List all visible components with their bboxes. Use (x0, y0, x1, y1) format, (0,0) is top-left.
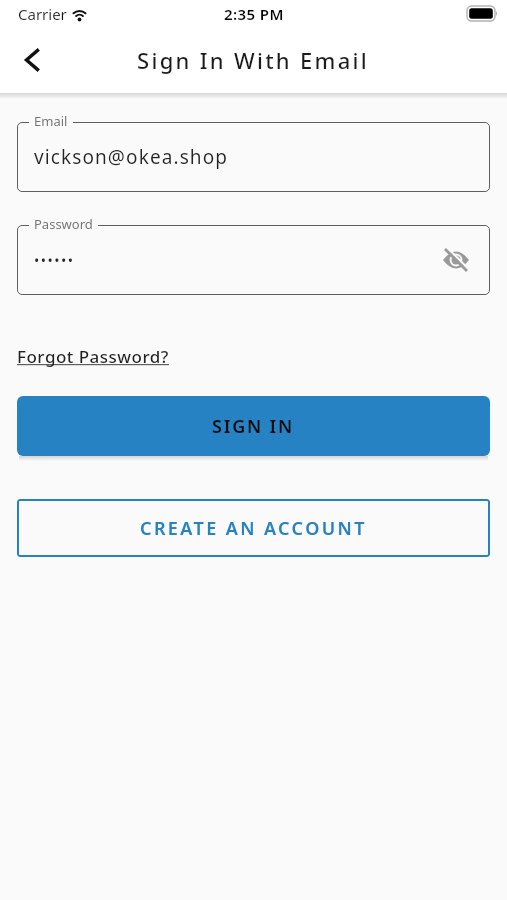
staticText: SIGN IN (212, 414, 295, 439)
staticText: Carrier (18, 4, 67, 24)
button[interactable] (10, 39, 52, 81)
button[interactable]: CREATE AN ACCOUNT (17, 499, 490, 557)
staticText: CREATE AN ACCOUNT (140, 516, 367, 541)
staticText: vickson@okea.shop (34, 144, 229, 170)
staticText: 2:35 PM (224, 4, 284, 24)
staticText: Sign In With Email (137, 45, 370, 75)
button[interactable]: vickson@okea.shop (17, 122, 490, 192)
staticText: Password (34, 215, 93, 233)
staticText: •••••• (34, 251, 75, 270)
staticText: Email (34, 112, 68, 130)
button[interactable]: Forgot Password? (17, 345, 169, 368)
button[interactable]: •••••• (17, 225, 490, 295)
button[interactable]: SIGN IN (17, 396, 490, 456)
